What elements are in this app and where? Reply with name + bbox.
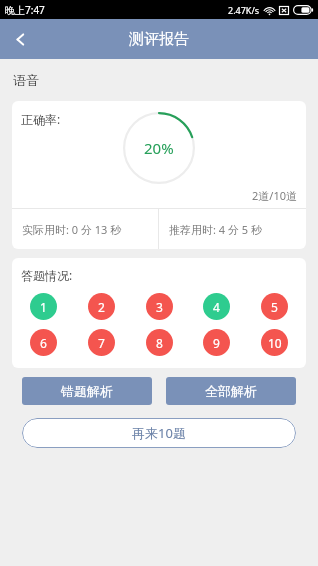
- staticText: 6: [40, 335, 47, 351]
- staticText: 再来10题: [132, 424, 186, 442]
- staticText: 推荐用时: 4 分 5 秒: [169, 222, 262, 237]
- button[interactable]: 再来10题: [22, 418, 296, 448]
- staticText: 答题情况:: [21, 267, 73, 283]
- staticText: 4: [213, 299, 220, 315]
- button[interactable]: 7: [88, 329, 115, 356]
- button[interactable]: 8: [146, 329, 173, 356]
- button[interactable]: 4: [203, 293, 230, 320]
- staticText: 5: [271, 299, 278, 315]
- staticText: 2道/10道: [252, 188, 297, 203]
- staticText: 20%: [144, 138, 174, 158]
- staticText: 9: [213, 335, 220, 351]
- button[interactable]: 6: [30, 329, 57, 356]
- button[interactable]: 3: [146, 293, 173, 320]
- staticText: 7: [98, 335, 105, 351]
- button[interactable]: Back: [0, 19, 40, 59]
- button[interactable]: 全部解析: [166, 377, 296, 405]
- staticText: 全部解析: [205, 383, 257, 399]
- staticText: 语音: [13, 72, 39, 88]
- button[interactable]: 10: [261, 329, 288, 356]
- staticText: 正确率:: [21, 111, 61, 127]
- staticText: 错题解析: [61, 383, 113, 399]
- button[interactable]: 1: [30, 293, 57, 320]
- staticText: 实际用时: 0 分 13 秒: [22, 222, 122, 237]
- staticText: 1: [40, 299, 47, 315]
- button[interactable]: 错题解析: [22, 377, 152, 405]
- staticText: 测评报告: [129, 30, 189, 49]
- staticText: 2.47K/s: [228, 4, 260, 16]
- staticText: 晚上7:47: [5, 3, 45, 17]
- staticText: 2: [98, 299, 105, 315]
- staticText: 10: [268, 335, 282, 351]
- button[interactable]: 5: [261, 293, 288, 320]
- staticText: 3: [156, 299, 163, 315]
- staticText: 8: [156, 335, 163, 351]
- button[interactable]: 2: [88, 293, 115, 320]
- button[interactable]: 9: [203, 329, 230, 356]
